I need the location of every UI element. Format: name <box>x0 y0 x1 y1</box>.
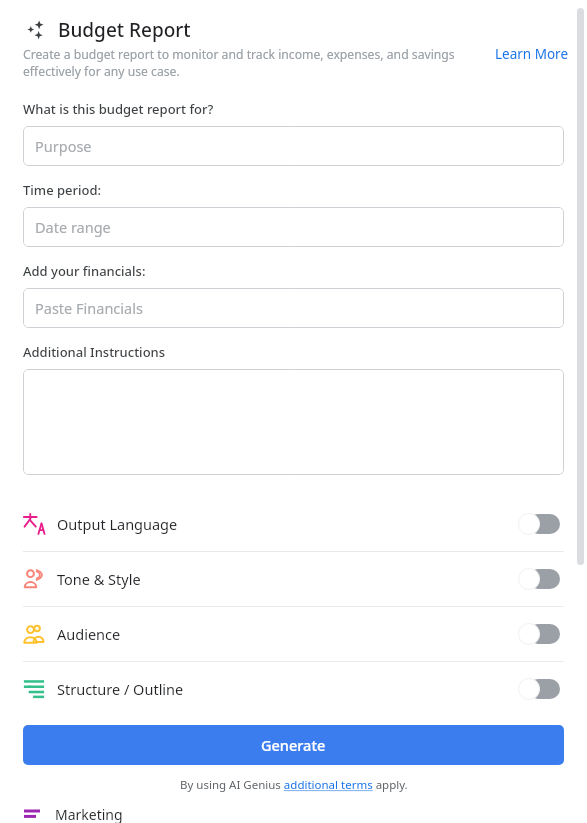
staticText: Learn More <box>495 45 569 63</box>
other: Toggle Audience <box>518 623 560 645</box>
staticText: Paste Financials <box>35 298 143 318</box>
staticText: Create a budget report to monitor and tr… <box>23 46 487 80</box>
staticText: Date range <box>35 217 111 237</box>
staticText: Structure / Outline <box>57 679 518 699</box>
button[interactable]: Generate <box>23 725 564 765</box>
button[interactable]: Marketing <box>23 805 564 823</box>
other: Toggle Structure / Outline <box>518 678 560 700</box>
staticText: Time period: <box>23 181 102 199</box>
staticText: Purpose <box>35 136 92 156</box>
button[interactable]: Paste Financials <box>23 288 564 328</box>
button[interactable] <box>23 369 564 475</box>
staticText: By using AI Genius additional terms appl… <box>180 777 408 793</box>
staticText: Budget Report <box>58 17 191 43</box>
button[interactable]: Audience <box>0 607 587 661</box>
staticText: Tone & Style <box>57 569 518 589</box>
button[interactable]: Output Language <box>0 497 587 551</box>
staticText: Generate <box>261 735 326 755</box>
staticText: Audience <box>57 624 518 644</box>
staticText: Add your financials: <box>23 262 146 280</box>
button[interactable]: Tone & Style <box>0 552 587 606</box>
staticText: Additional Instructions <box>23 343 166 361</box>
other: Toggle Output Language <box>518 513 560 535</box>
other: Toggle Tone & Style <box>518 568 560 590</box>
button[interactable]: Purpose <box>23 126 564 166</box>
button[interactable]: Date range <box>23 207 564 247</box>
staticText: What is this budget report for? <box>23 100 214 118</box>
staticText: Output Language <box>57 514 518 534</box>
button[interactable]: Learn More <box>495 45 569 63</box>
staticText: Marketing <box>55 805 123 823</box>
button[interactable]: Structure / Outline <box>0 662 587 716</box>
